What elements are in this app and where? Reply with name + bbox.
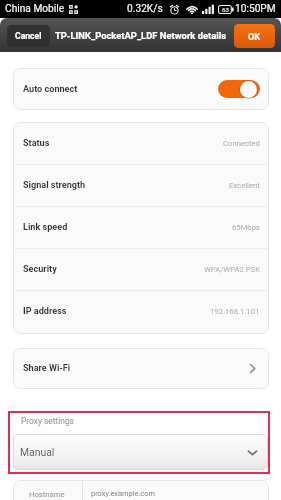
staticText: Hostname — [29, 490, 65, 499]
staticText: OK — [248, 31, 261, 42]
button[interactable]: Hostname — [13, 480, 269, 500]
other: Expand proxy settings — [246, 446, 259, 459]
button[interactable]: Auto connect — [23, 68, 260, 110]
staticText: Cancel — [15, 31, 42, 41]
staticText: IP address — [23, 306, 67, 317]
button[interactable]: Security — [23, 249, 260, 290]
staticText: Signal strength — [23, 180, 86, 191]
button[interactable]: Auto connect — [218, 79, 260, 99]
button[interactable]: Signal strength — [23, 165, 260, 206]
staticText: Status — [23, 138, 50, 149]
staticText: Excellent — [229, 181, 260, 190]
button[interactable]: Link speed — [23, 207, 260, 248]
staticText: Connected — [223, 139, 260, 148]
staticText: Proxy settings — [21, 416, 74, 426]
staticText: China Mobile — [5, 3, 65, 15]
staticText: 192.168.1.101 — [210, 307, 260, 316]
staticText: TP-LINK_PocketAP_LDF Network details — [55, 30, 227, 41]
button[interactable]: Cancel — [7, 25, 50, 47]
staticText: 65Mbps — [232, 223, 260, 232]
button[interactable]: OK — [234, 24, 275, 48]
staticText: Auto connect — [23, 84, 78, 95]
staticText: Link speed — [23, 222, 68, 233]
button[interactable]: Share Wi-Fi — [23, 348, 259, 389]
staticText: Security — [23, 264, 57, 275]
staticText: proxy.example.com — [91, 489, 155, 498]
button[interactable]: Manual — [13, 434, 268, 470]
staticText: 63 — [222, 6, 229, 13]
staticText: Manual — [20, 446, 55, 458]
other: Share Wi-Fi — [246, 362, 259, 375]
staticText: 10:50PM — [235, 3, 276, 15]
button[interactable]: IP address — [23, 291, 260, 332]
staticText: WPA/WPA2 PSK — [204, 265, 260, 274]
button[interactable]: Status — [23, 122, 260, 164]
staticText: 0.32K/s — [127, 3, 163, 15]
staticText: Share Wi-Fi — [23, 363, 71, 374]
